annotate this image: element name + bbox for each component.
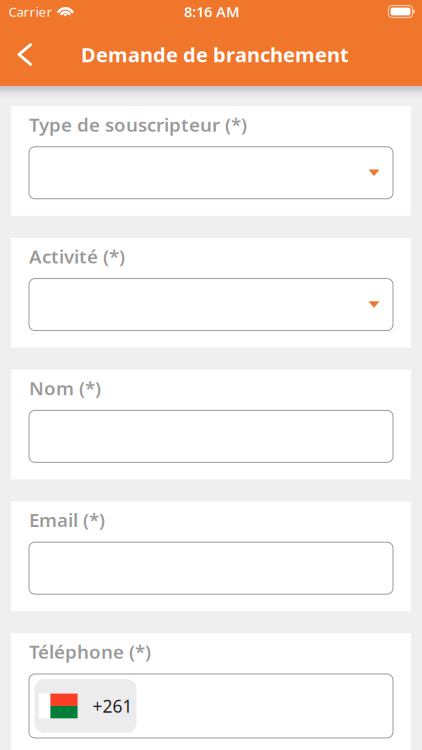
staticText: 8:16 AM: [184, 2, 240, 21]
staticText: Type de souscripteur (*): [29, 112, 247, 137]
staticText: +261: [93, 694, 133, 717]
button[interactable]: Country code +261: [34, 679, 137, 733]
staticText: Activité (*): [29, 244, 125, 269]
staticText: Nom (*): [29, 376, 101, 400]
staticText: Email (*): [29, 507, 105, 532]
staticText: Demande de branchement: [81, 41, 349, 68]
staticText: Téléphone (*): [29, 639, 151, 664]
staticText: Carrier: [8, 3, 52, 20]
button[interactable]: Back: [0, 31, 48, 78]
